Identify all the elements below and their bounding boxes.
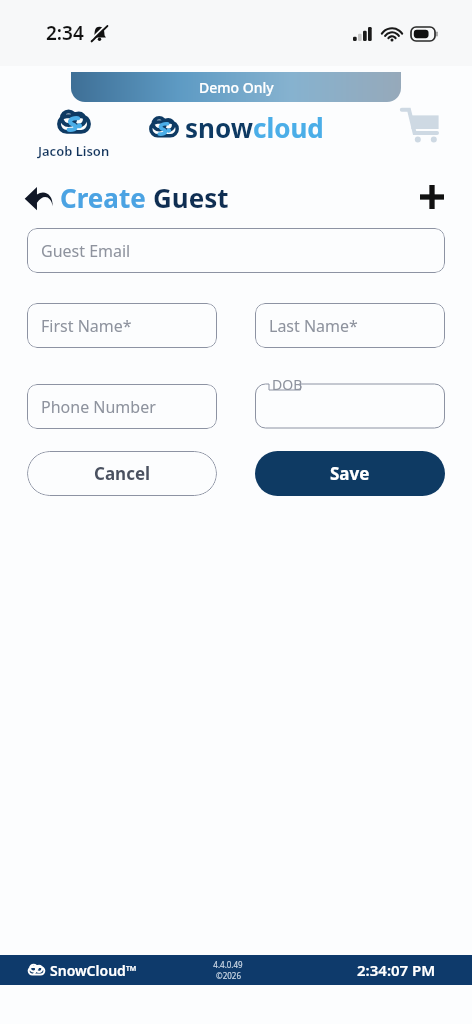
button[interactable]: snow bbox=[149, 110, 324, 145]
staticText: Cancel bbox=[94, 462, 151, 485]
staticText: Save bbox=[330, 462, 370, 485]
button[interactable]: Save bbox=[255, 451, 445, 496]
button[interactable]: Last Name* bbox=[255, 303, 445, 348]
button[interactable]: First Name* bbox=[27, 303, 217, 348]
button[interactable]: Add bbox=[414, 179, 450, 215]
staticText: SnowCloud™ bbox=[50, 961, 137, 980]
staticText: Create bbox=[60, 180, 153, 215]
staticText: First Name* bbox=[41, 315, 132, 337]
staticText: DOB bbox=[272, 375, 303, 394]
button[interactable]: Cart bbox=[398, 102, 444, 148]
staticText: Demo Only bbox=[199, 78, 274, 97]
staticText: ©2026 bbox=[216, 970, 241, 981]
other: Back bbox=[22, 181, 56, 215]
staticText: Guest bbox=[153, 180, 229, 215]
staticText: 2:34:07 PM bbox=[357, 960, 436, 980]
staticText: 2:34 bbox=[46, 20, 84, 46]
button[interactable]: Back bbox=[22, 180, 229, 215]
staticText: 4.4.0.49 bbox=[213, 959, 243, 970]
staticText: Phone Number bbox=[41, 396, 156, 418]
staticText: Last Name* bbox=[269, 315, 358, 337]
staticText: cloud bbox=[253, 110, 324, 145]
button[interactable]: Cancel bbox=[27, 451, 217, 496]
staticText: Jacob Lison bbox=[38, 142, 110, 160]
button[interactable]: Jacob Lison bbox=[36, 104, 112, 162]
staticText: snow bbox=[185, 110, 253, 145]
button[interactable]: Phone Number bbox=[27, 384, 217, 429]
button[interactable]: Guest Email bbox=[27, 228, 445, 273]
staticText: Guest Email bbox=[41, 240, 131, 262]
